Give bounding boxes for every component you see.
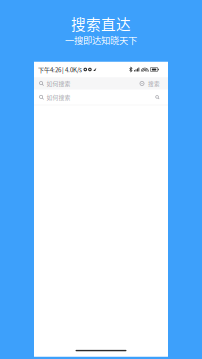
staticText: | 4.0K/s [61,65,82,74]
staticText: 搜索直达 [71,13,131,34]
staticText: 一搜即达知晓天下 [65,33,137,47]
button[interactable]: 如何搜索 [34,77,168,90]
button[interactable]: 如何搜索 [34,90,168,105]
staticText: 如何搜索 [46,93,70,101]
staticText: 搜索 [148,79,160,87]
staticText: 如何搜索 [46,79,70,88]
staticText: 下午4:26 [38,65,61,74]
